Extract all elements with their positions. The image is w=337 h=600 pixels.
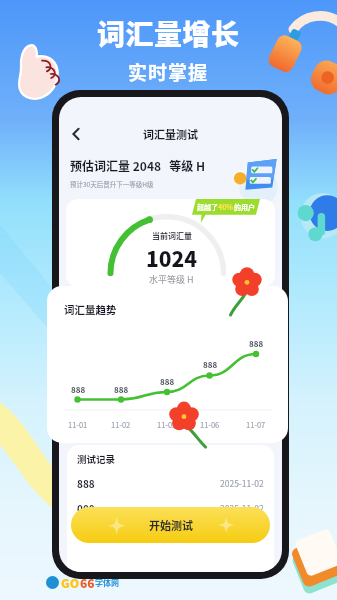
staticText: 词汇量趋势 — [64, 302, 117, 317]
staticText: 66 — [80, 574, 95, 591]
staticText: 888 — [77, 476, 95, 490]
staticText: 888 — [114, 384, 129, 396]
staticText: 11-01 — [68, 419, 88, 430]
staticText: 000 — [77, 501, 95, 515]
staticText: 字体网 — [95, 577, 119, 589]
staticText: GO — [61, 574, 80, 591]
staticText: 11-02 — [111, 419, 131, 430]
staticText: 2025-11-02 — [220, 477, 264, 489]
staticText: 888 — [71, 384, 86, 396]
staticText: 11-05 — [157, 419, 177, 430]
staticText: 888 — [160, 376, 175, 388]
button[interactable]: 000 — [77, 501, 264, 515]
staticText: 888 — [249, 338, 264, 350]
staticText: 1024 — [146, 243, 198, 273]
staticText: 实时掌握 — [128, 58, 209, 86]
staticText: 词汇量增长 — [97, 13, 240, 54]
staticText: 2025-11-02 — [220, 502, 264, 514]
button[interactable]: 开始测试 — [71, 507, 270, 543]
staticText: 预计30天后晋升下一等级H级 — [70, 179, 154, 188]
button[interactable]: 888 — [77, 476, 264, 490]
staticText: 11-06 — [200, 419, 220, 430]
staticText: 当前词汇量 — [152, 230, 192, 242]
staticText: 水平等级 H — [149, 273, 194, 286]
staticText: 测试记录 — [77, 452, 116, 466]
staticText: 预估词汇量 2048 等级 H — [70, 157, 206, 174]
staticText: 40% — [218, 202, 234, 212]
staticText: 超越了 — [197, 202, 218, 212]
staticText: 词汇量测试 — [143, 126, 198, 142]
staticText: 的用户 — [234, 202, 255, 212]
button[interactable]: Back — [63, 121, 89, 147]
staticText: 11-07 — [246, 419, 266, 430]
staticText: 开始测试 — [149, 517, 193, 533]
staticText: 888 — [203, 359, 218, 371]
